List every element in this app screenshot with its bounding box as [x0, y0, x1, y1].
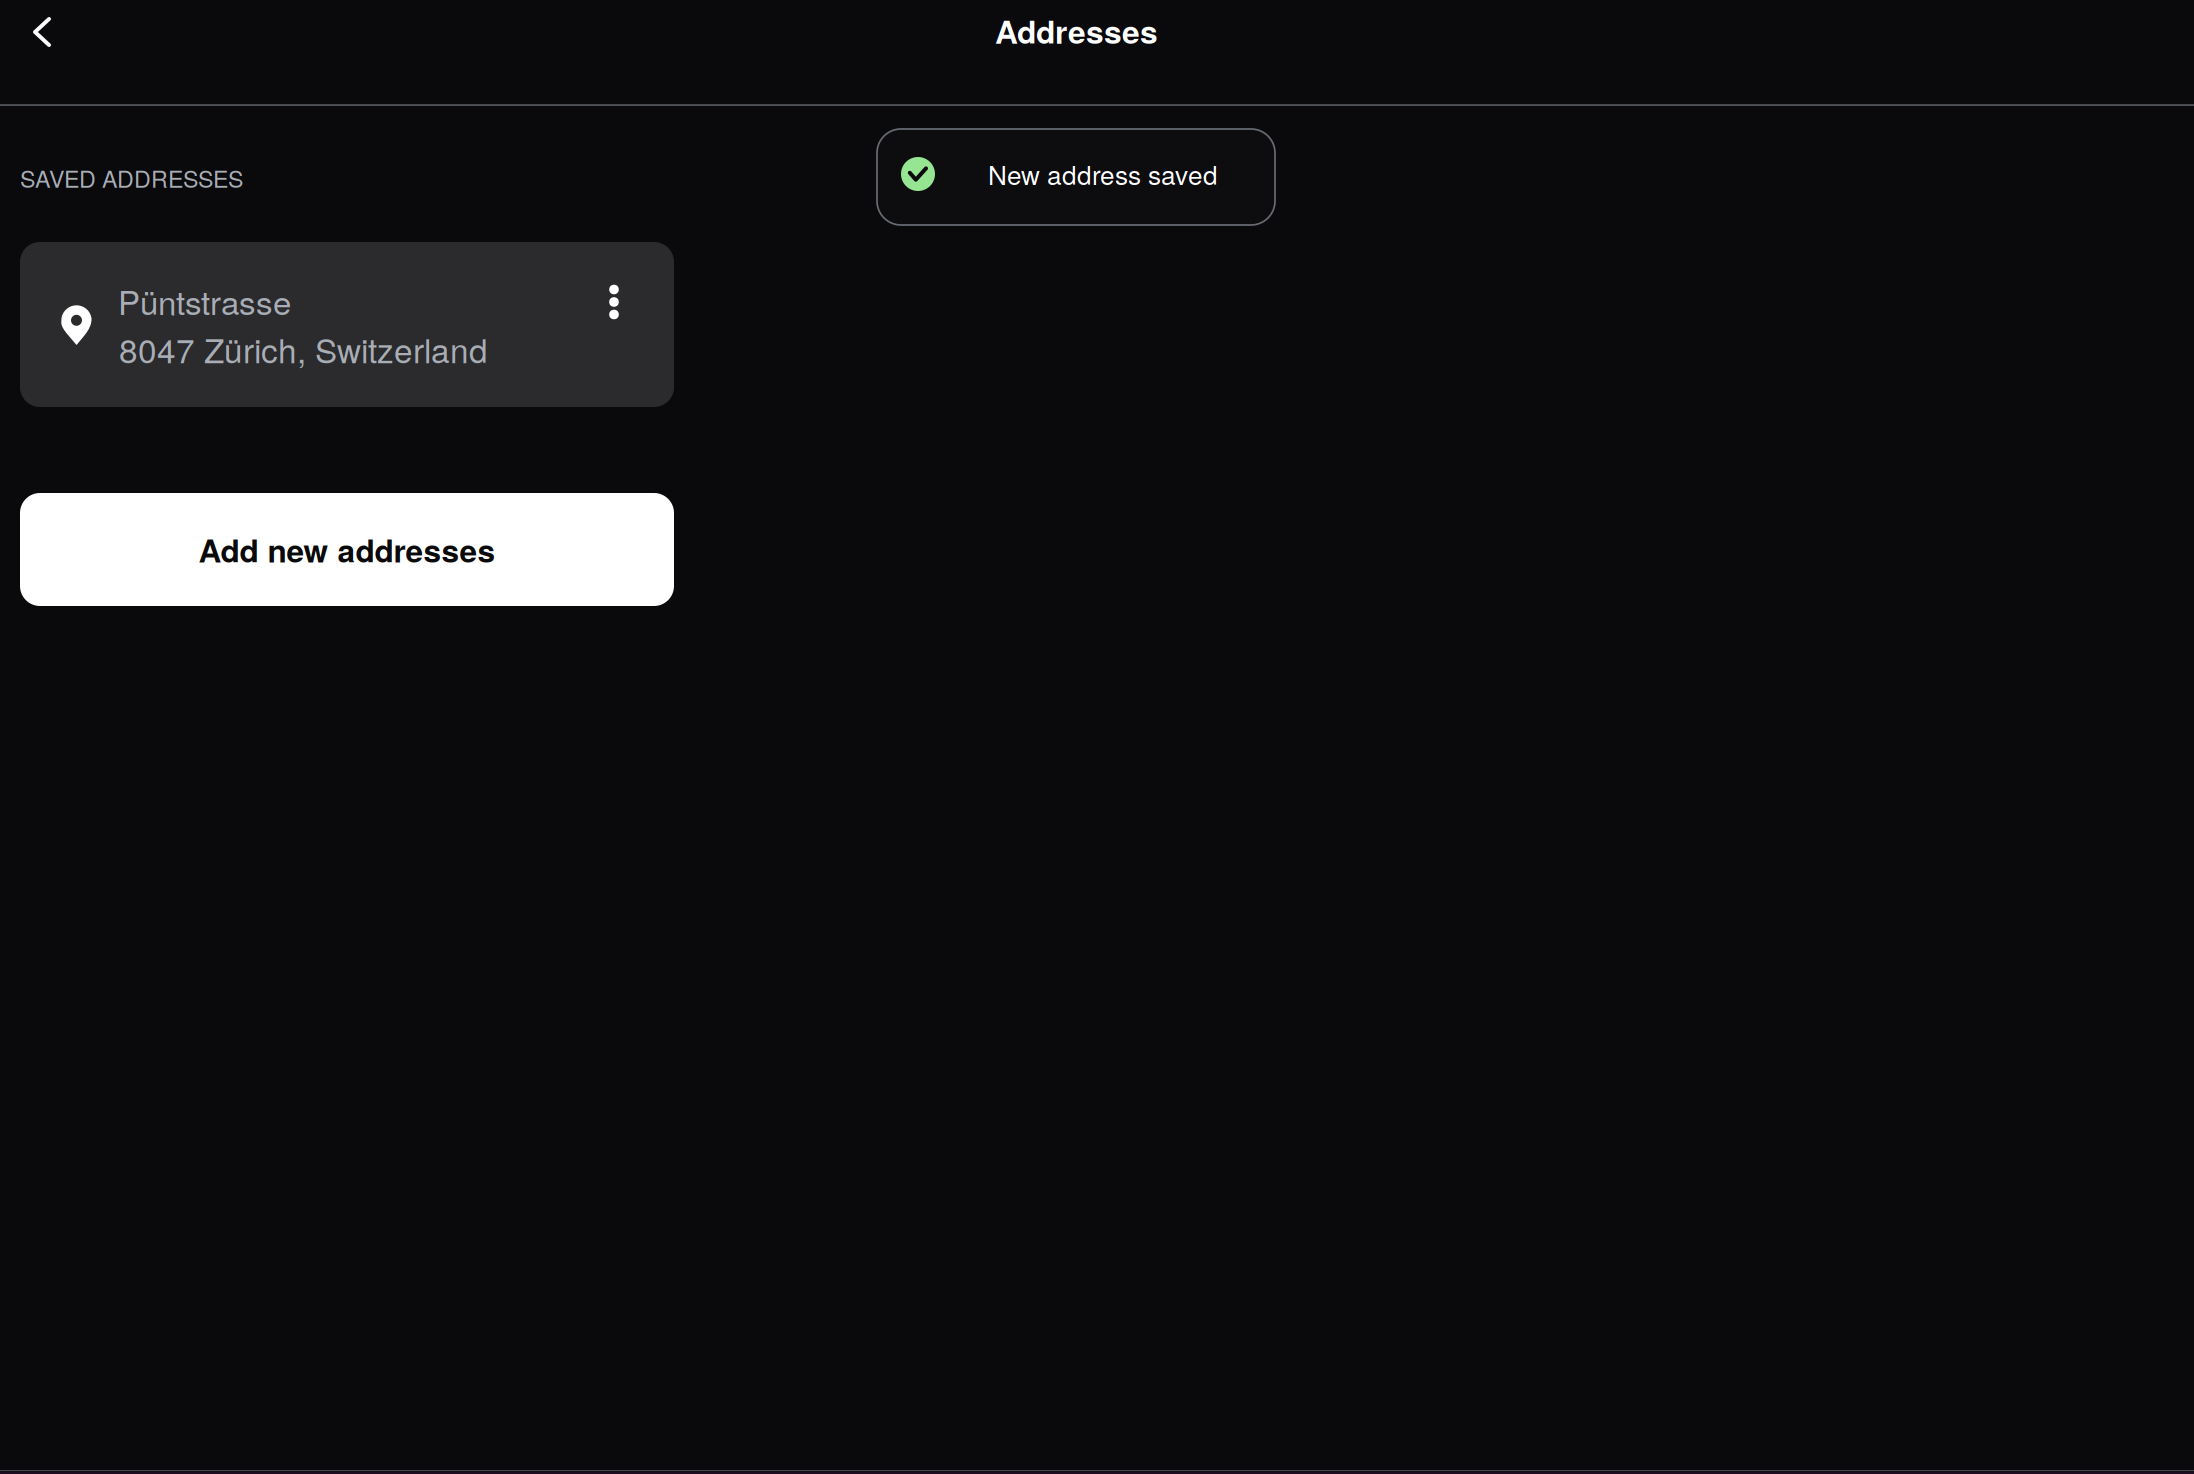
button[interactable]: Add new addresses [20, 493, 674, 606]
button[interactable]: Back [0, 0, 84, 65]
staticText: New address saved [988, 155, 1218, 192]
staticText: 8047 Zürich, Switzerland [119, 325, 488, 373]
staticText: Addresses [995, 8, 1158, 53]
staticText: SAVED ADDRESSES [20, 161, 243, 194]
staticText: Püntstrasse [118, 277, 291, 324]
button[interactable]: Püntstrasse [20, 242, 674, 407]
staticText: Add new addresses [198, 527, 495, 572]
button[interactable]: More options [590, 274, 638, 330]
